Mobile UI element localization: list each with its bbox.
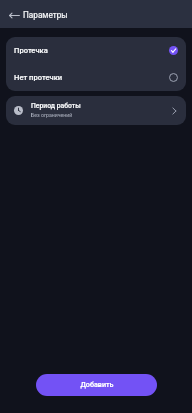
button[interactable]: Протечка — [6, 37, 186, 64]
button[interactable]: Период работы — [6, 96, 186, 125]
staticText: Протечка — [14, 46, 169, 55]
staticText: Период работы — [31, 102, 81, 110]
staticText: Нет протечки — [14, 73, 169, 82]
staticText: Параметры — [23, 10, 68, 20]
staticText: Без ограничений — [31, 112, 73, 118]
staticText: Добавить — [80, 380, 114, 388]
button[interactable]: Back — [0, 0, 23, 28]
button[interactable]: Нет протечки — [6, 64, 186, 91]
button[interactable]: Добавить — [36, 374, 157, 396]
